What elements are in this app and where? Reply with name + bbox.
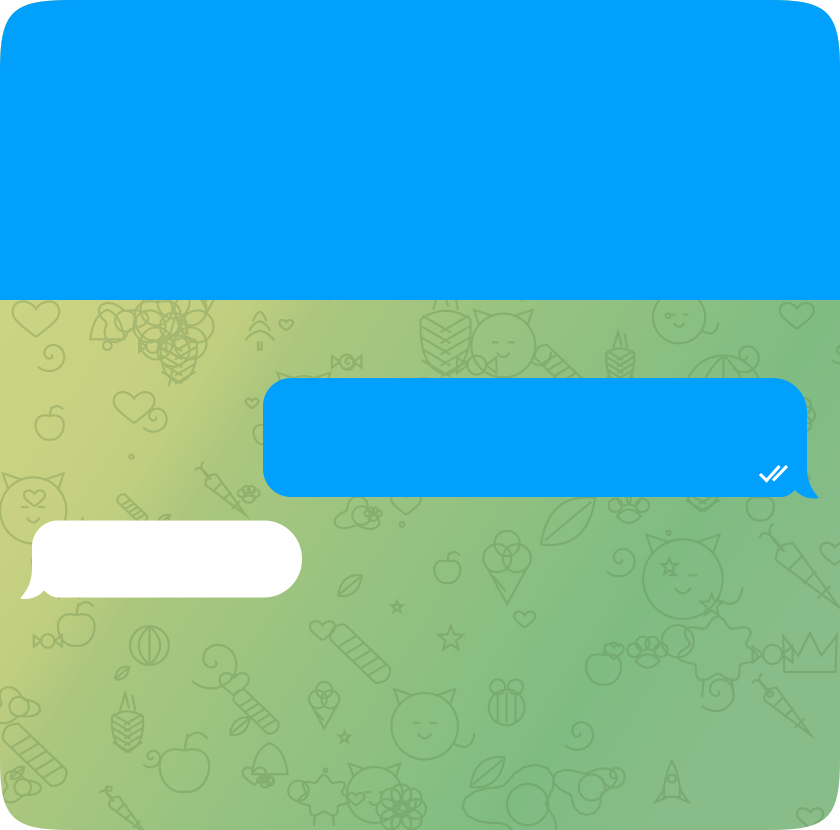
button[interactable]: Sent message, read xyxy=(263,378,819,498)
button[interactable]: Chat info xyxy=(0,0,840,300)
button[interactable]: Received message xyxy=(20,520,302,598)
